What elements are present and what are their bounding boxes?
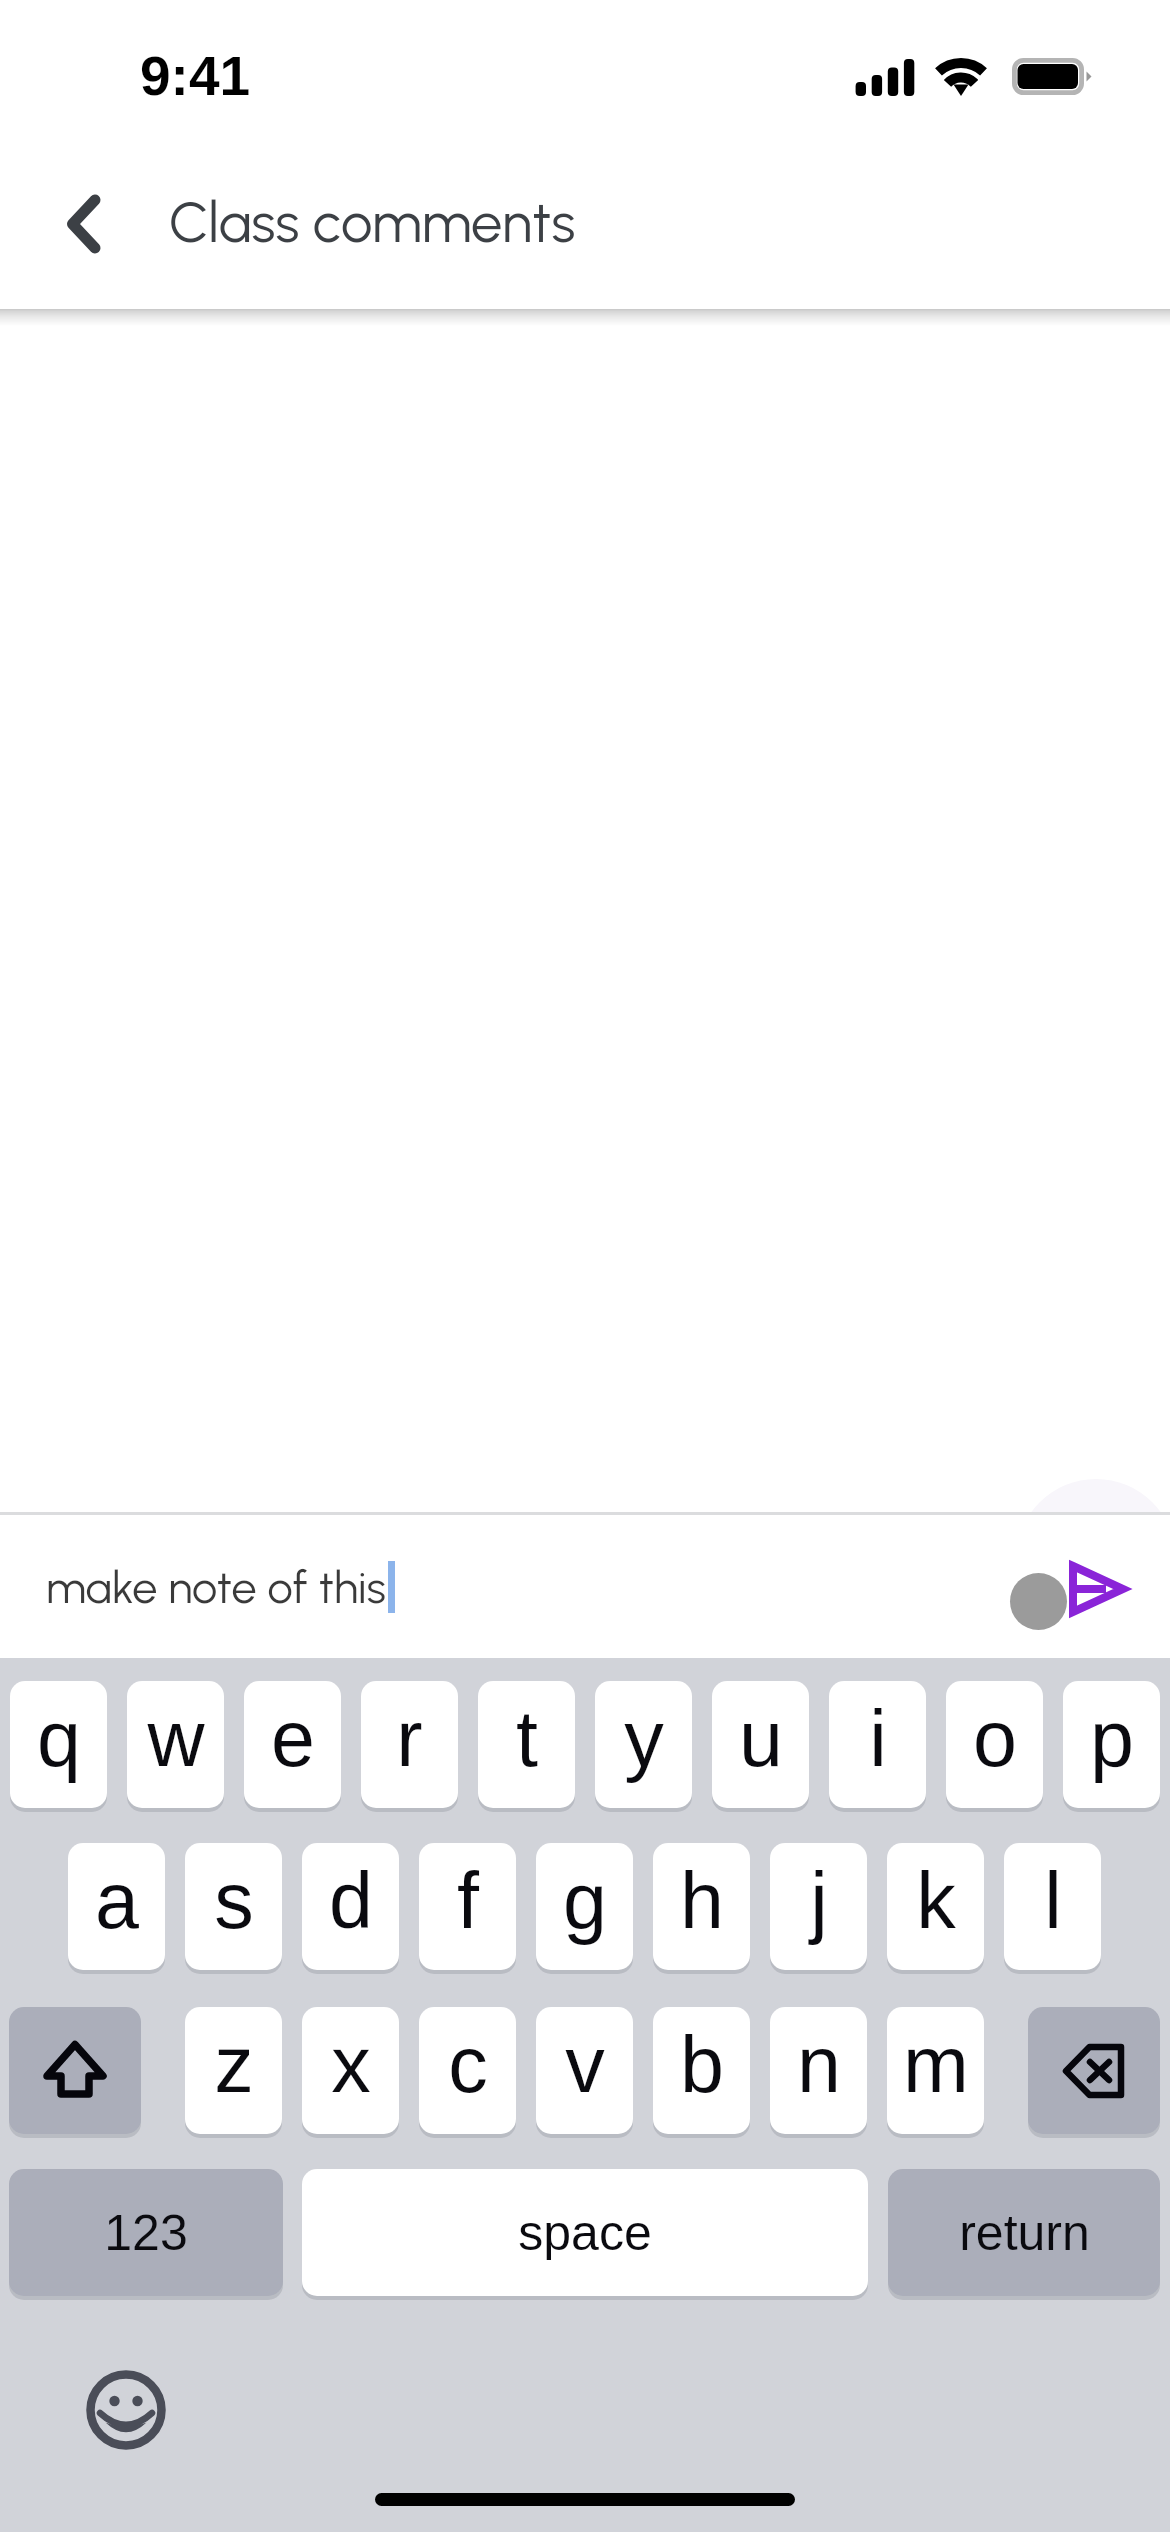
- staticText: i: [869, 1694, 887, 1782]
- staticText: 123: [104, 2205, 188, 2261]
- staticText: 9:41: [140, 45, 251, 106]
- staticText: x: [331, 2020, 371, 2108]
- button[interactable]: x: [302, 2007, 399, 2134]
- staticText: d: [329, 1856, 373, 1944]
- staticText: Class comments: [169, 189, 576, 256]
- button[interactable]: b: [653, 2007, 750, 2134]
- button[interactable]: c: [419, 2007, 516, 2134]
- button[interactable]: o: [946, 1681, 1043, 1808]
- button[interactable]: i: [829, 1681, 926, 1808]
- button[interactable]: Shift: [9, 2007, 141, 2134]
- button[interactable]: n: [770, 2007, 867, 2134]
- button[interactable]: m: [887, 2007, 984, 2134]
- button[interactable]: l: [1004, 1843, 1101, 1970]
- button[interactable]: r: [361, 1681, 458, 1808]
- staticText: g: [563, 1856, 607, 1944]
- button[interactable]: Backspace: [1028, 2007, 1160, 2134]
- button[interactable]: v: [536, 2007, 633, 2134]
- staticText: u: [739, 1694, 783, 1782]
- staticText: v: [565, 2020, 605, 2108]
- button[interactable]: g: [536, 1843, 633, 1970]
- button[interactable]: j: [770, 1843, 867, 1970]
- staticText: return: [959, 2205, 1090, 2261]
- staticText: space: [518, 2205, 652, 2261]
- staticText: a: [95, 1856, 139, 1944]
- staticText: z: [214, 2020, 254, 2108]
- button[interactable]: p: [1063, 1681, 1160, 1808]
- staticText: l: [1044, 1856, 1062, 1944]
- button[interactable]: z: [185, 2007, 282, 2134]
- staticText: f: [457, 1856, 479, 1944]
- button[interactable]: q: [10, 1681, 107, 1808]
- button[interactable]: u: [712, 1681, 809, 1808]
- staticText: r: [396, 1694, 423, 1782]
- staticText: h: [680, 1856, 724, 1944]
- staticText: p: [1090, 1694, 1134, 1782]
- button[interactable]: f: [419, 1843, 516, 1970]
- staticText: c: [448, 2020, 488, 2108]
- button[interactable]: h: [653, 1843, 750, 1970]
- button[interactable]: e: [244, 1681, 341, 1808]
- button[interactable]: make note of this: [0, 1515, 960, 1658]
- staticText: b: [680, 2020, 724, 2108]
- staticText: n: [797, 2020, 841, 2108]
- button[interactable]: y: [595, 1681, 692, 1808]
- staticText: make note of this: [46, 1560, 386, 1614]
- button[interactable]: Back: [23, 173, 143, 293]
- staticText: k: [916, 1856, 956, 1944]
- button[interactable]: space: [302, 2169, 868, 2296]
- button[interactable]: Emoji keyboard: [84, 2368, 168, 2452]
- button[interactable]: d: [302, 1843, 399, 1970]
- staticText: o: [973, 1694, 1017, 1782]
- staticText: j: [810, 1856, 828, 1944]
- button[interactable]: return: [888, 2169, 1160, 2296]
- staticText: q: [37, 1694, 81, 1782]
- staticText: y: [624, 1694, 664, 1782]
- button[interactable]: 123: [9, 2169, 283, 2296]
- staticText: s: [214, 1856, 254, 1944]
- staticText: t: [516, 1694, 538, 1782]
- button[interactable]: Send comment: [1000, 1515, 1170, 1658]
- button[interactable]: s: [185, 1843, 282, 1970]
- staticText: w: [147, 1694, 205, 1782]
- staticText: e: [271, 1694, 315, 1782]
- staticText: m: [903, 2020, 969, 2108]
- button[interactable]: w: [127, 1681, 224, 1808]
- button[interactable]: t: [478, 1681, 575, 1808]
- button[interactable]: a: [68, 1843, 165, 1970]
- button[interactable]: k: [887, 1843, 984, 1970]
